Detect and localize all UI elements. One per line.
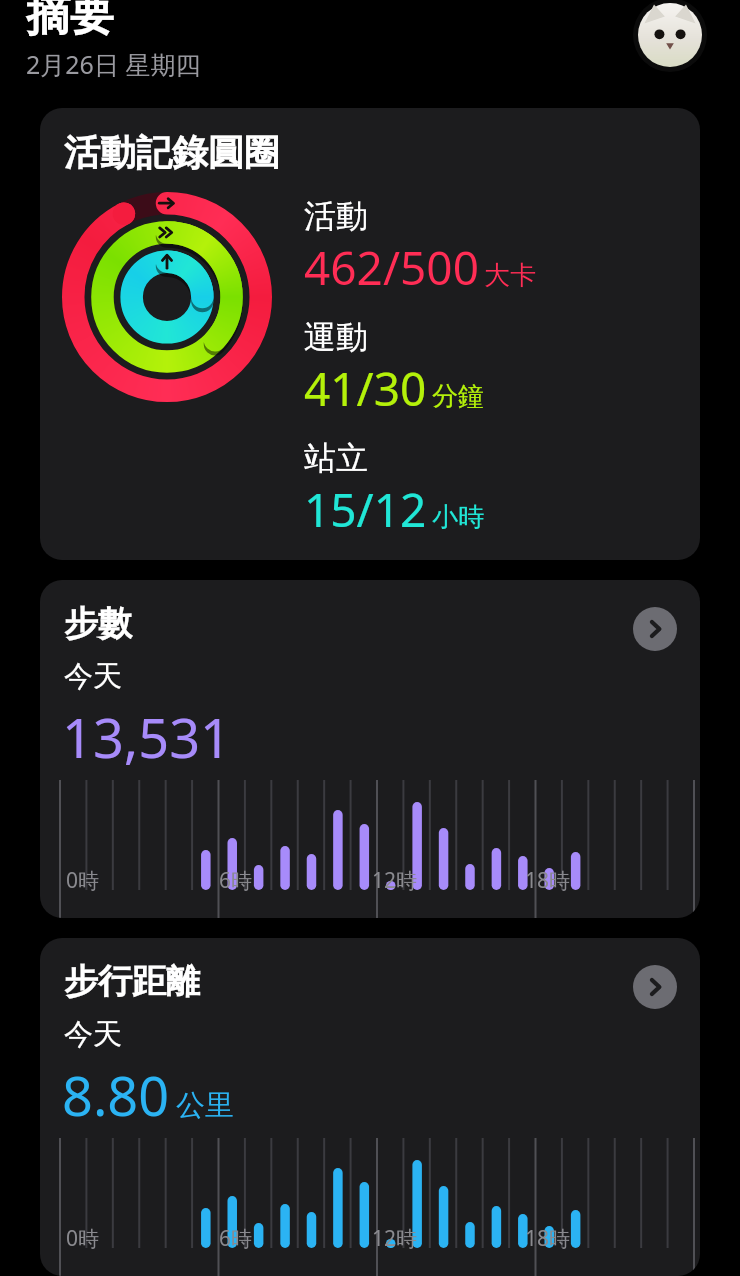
staticText: 今天	[64, 658, 122, 695]
staticText: 18時	[525, 1224, 571, 1253]
staticText: 大卡	[484, 259, 536, 292]
staticText: 6時	[219, 1224, 253, 1253]
staticText: 步行距離	[64, 960, 200, 1003]
staticText: 摘要	[26, 0, 114, 43]
staticText: 站立	[304, 438, 368, 478]
staticText: 小時	[432, 501, 484, 534]
staticText: 41/30	[304, 357, 427, 420]
staticText: 活動記錄圓圈	[64, 130, 280, 175]
staticText: 15/12	[304, 478, 427, 541]
staticText: 公里	[176, 1087, 234, 1124]
staticText: 0時	[66, 866, 100, 895]
staticText: 步數	[64, 602, 132, 645]
staticText: 462/500	[304, 236, 479, 299]
staticText: 0時	[66, 1224, 100, 1253]
button[interactable]: 步行距離	[40, 938, 700, 1276]
staticText: 18時	[525, 866, 571, 895]
button[interactable]: 步行距離詳細資料	[633, 965, 677, 1009]
staticText: 8.80	[62, 1058, 170, 1132]
button[interactable]: 步數詳細資料	[633, 607, 677, 651]
button[interactable]: 步數	[40, 580, 700, 918]
staticText: 12時	[372, 866, 418, 895]
button[interactable]: 活動記錄圓圈	[40, 108, 700, 560]
staticText: 活動	[304, 196, 368, 236]
staticText: 12時	[372, 1224, 418, 1253]
staticText: 分鐘	[432, 380, 484, 413]
button[interactable]: 個人檔案	[633, 0, 707, 72]
staticText: 2月26日 星期四	[26, 47, 201, 81]
staticText: 運動	[304, 317, 368, 357]
staticText: 6時	[219, 866, 253, 895]
staticText: 今天	[64, 1016, 122, 1053]
staticText: 13,531	[62, 700, 231, 774]
